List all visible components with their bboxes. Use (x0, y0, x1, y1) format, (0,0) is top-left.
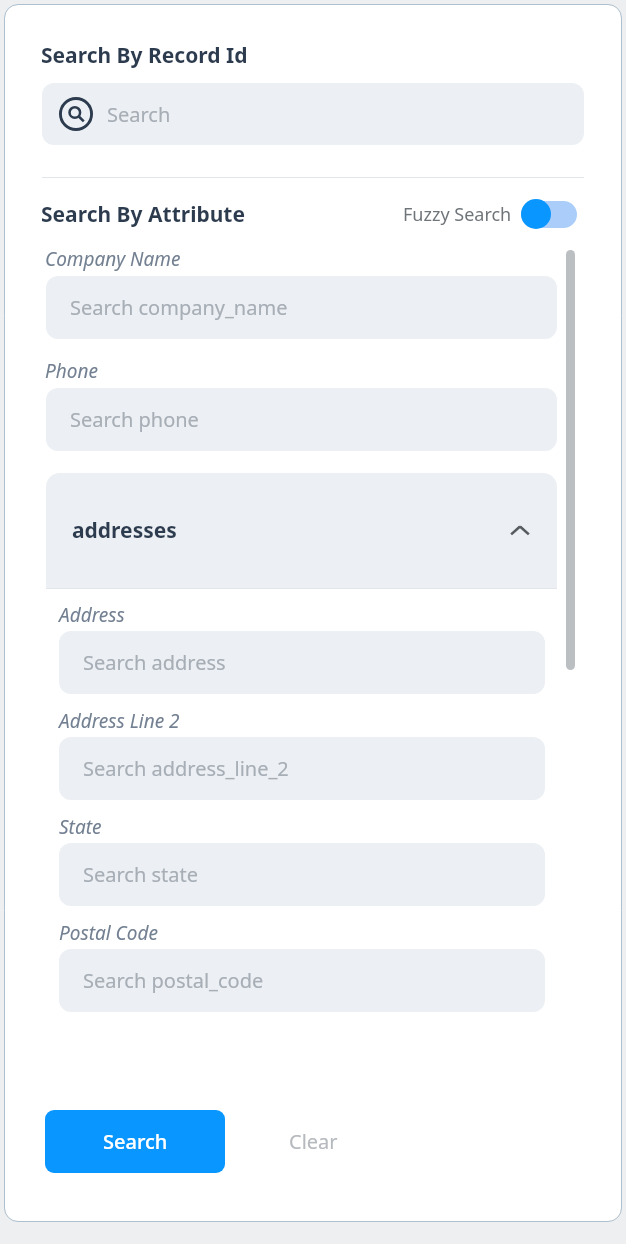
button[interactable]: Search (42, 83, 584, 145)
button[interactable]: Search address (59, 631, 545, 694)
staticText: Search company_name (70, 294, 288, 321)
other: Search (59, 97, 93, 131)
button[interactable]: Search (45, 1110, 225, 1173)
button[interactable]: Fuzzy Search toggle (521, 199, 577, 229)
button[interactable]: Search phone (46, 388, 557, 451)
button[interactable]: Search company_name (46, 276, 557, 339)
button[interactable]: Search postal_code (59, 949, 545, 1012)
staticText: Postal Code (59, 920, 158, 946)
staticText: Search By Attribute (41, 200, 246, 229)
staticText: Company Name (45, 246, 181, 272)
staticText: Search (107, 101, 171, 128)
staticText: Search postal_code (83, 967, 264, 994)
staticText: Search address_line_2 (83, 755, 289, 782)
staticText: Search state (83, 861, 199, 888)
staticText: Phone (45, 358, 98, 384)
staticText: Clear (289, 1128, 338, 1155)
staticText: Search phone (70, 406, 199, 433)
button[interactable]: addresses (46, 473, 557, 588)
staticText: Search address (83, 649, 226, 676)
staticText: Search (103, 1128, 168, 1155)
button[interactable]: Search address_line_2 (59, 737, 545, 800)
staticText: Search By Record Id (41, 41, 248, 70)
staticText: Address Line 2 (59, 708, 180, 734)
other: Collapse addresses (507, 518, 533, 544)
button[interactable]: Search state (59, 843, 545, 906)
staticText: Address (59, 602, 125, 628)
button[interactable]: Clear (253, 1110, 373, 1173)
button[interactable]: Fuzzy Search (403, 199, 577, 229)
staticText: State (59, 814, 102, 840)
staticText: Fuzzy Search (403, 202, 512, 227)
staticText: addresses (72, 516, 177, 545)
